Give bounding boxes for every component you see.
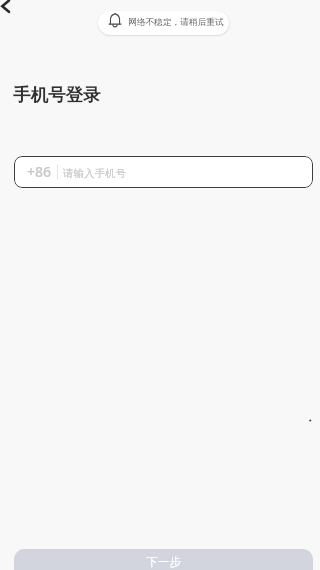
staticText: 手机号登录 (13, 84, 101, 106)
staticText: 请输入手机号 (63, 167, 126, 180)
staticText: 网络不稳定，请稍后重试 (128, 17, 224, 28)
button[interactable]: +86 (14, 156, 313, 188)
staticText: 下一步 (146, 555, 181, 569)
button[interactable]: Back (0, 0, 26, 26)
button[interactable]: 网络不稳定，请稍后重试 (98, 11, 229, 35)
button[interactable]: 下一步 (14, 549, 313, 570)
staticText: +86 (27, 162, 52, 181)
